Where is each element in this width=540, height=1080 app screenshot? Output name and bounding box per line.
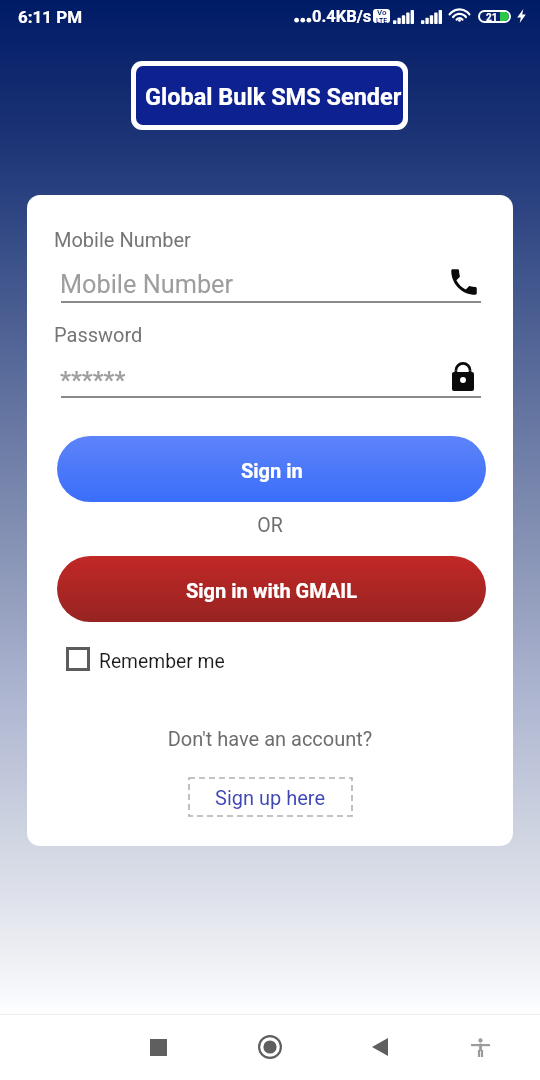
staticText: Mobile Number xyxy=(54,228,191,251)
staticText: Don't have an account? xyxy=(27,727,513,750)
staticText: 0.4KB/s xyxy=(312,7,372,26)
button[interactable]: Remember me xyxy=(63,644,225,674)
button[interactable]: Recents xyxy=(134,1023,182,1071)
button[interactable]: Accessibility xyxy=(456,1023,504,1071)
button[interactable]: Global Bulk SMS Sender xyxy=(136,66,403,125)
button[interactable]: Back xyxy=(356,1023,404,1071)
other: Phone xyxy=(447,265,481,299)
staticText: LTE xyxy=(376,17,388,23)
staticText: 6:11 PM xyxy=(18,7,83,27)
staticText: OR xyxy=(27,514,513,537)
staticText: Sign in xyxy=(241,459,303,482)
button[interactable]: Sign in with GMAIL xyxy=(57,556,486,622)
button[interactable]: Sign in xyxy=(57,436,486,502)
button[interactable]: Home xyxy=(246,1023,294,1071)
staticText: ****** xyxy=(60,366,126,394)
other: Password xyxy=(452,362,474,391)
staticText: Global Bulk SMS Sender xyxy=(145,83,402,111)
staticText: Mobile Number xyxy=(60,270,234,300)
staticText: Password xyxy=(54,323,143,346)
staticText: Remember me xyxy=(99,650,225,673)
staticText: Sign up here xyxy=(215,786,326,809)
staticText: 21 xyxy=(486,12,498,21)
staticText: Sign in with GMAIL xyxy=(186,579,358,602)
button[interactable]: Sign up here xyxy=(189,778,352,816)
staticText: Vo xyxy=(377,9,387,15)
